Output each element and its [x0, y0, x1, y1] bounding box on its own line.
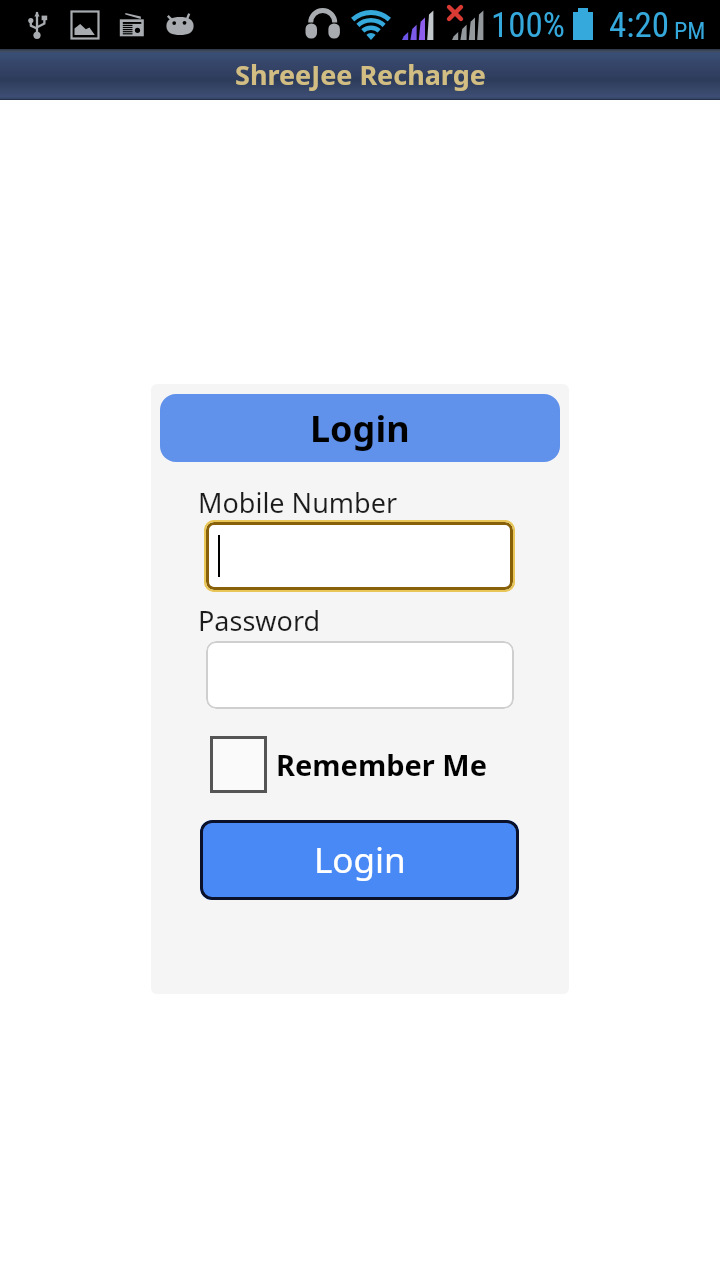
- staticText: Mobile Number: [198, 484, 398, 521]
- button[interactable]: [206, 522, 513, 590]
- staticText: Login: [310, 404, 410, 453]
- staticText: 100%: [491, 5, 565, 46]
- button[interactable]: Login: [160, 394, 560, 462]
- staticText: Password: [198, 602, 321, 639]
- staticText: ShreeJee Recharge: [235, 56, 486, 93]
- staticText: PM: [674, 17, 706, 45]
- button[interactable]: Remember Me: [210, 736, 488, 793]
- staticText: Login: [314, 836, 406, 884]
- button[interactable]: [206, 641, 514, 709]
- staticText: Remember Me: [276, 745, 488, 784]
- button[interactable]: Login: [200, 820, 519, 900]
- staticText: 4:20: [609, 5, 670, 46]
